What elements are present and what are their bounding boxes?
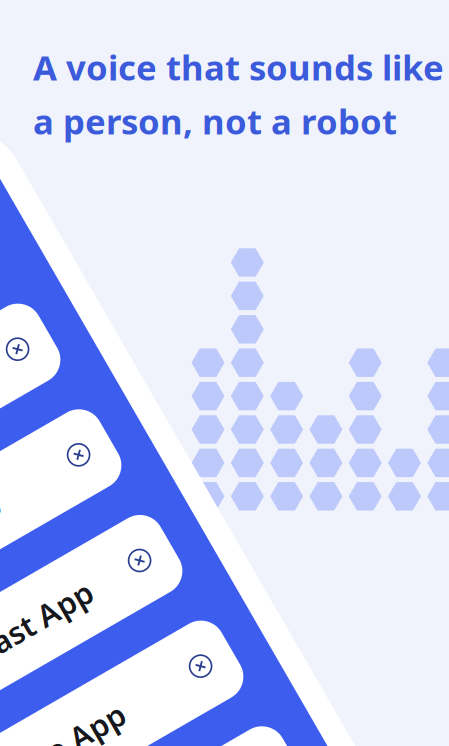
button[interactable]: Podcast App (0, 575, 190, 660)
button[interactable]: Video App (0, 697, 190, 746)
button[interactable]: News App (0, 453, 190, 538)
staticText: Music App (0, 232, 68, 272)
staticText: a person, not a robot (33, 98, 397, 144)
staticText: Podcast App (0, 598, 98, 638)
staticText: Video App (0, 720, 65, 746)
staticText: News App (0, 476, 62, 516)
staticText: A voice that sounds like (33, 44, 444, 90)
staticText: Radio App (0, 354, 66, 394)
button[interactable]: Music App (0, 209, 190, 294)
button[interactable]: Radio App (0, 331, 190, 416)
